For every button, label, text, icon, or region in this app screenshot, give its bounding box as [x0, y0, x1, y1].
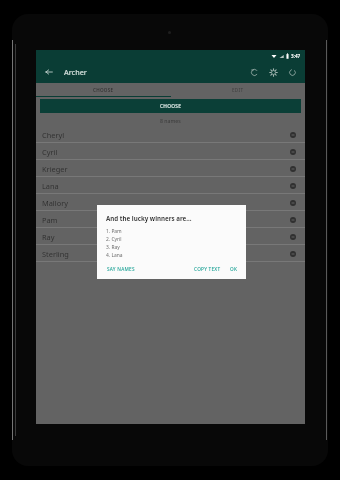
button[interactable]: Sterling — [36, 245, 305, 262]
staticText: 2. Cyril — [106, 236, 122, 243]
staticText: CHOOSE — [160, 103, 182, 110]
button[interactable]: Pam — [36, 211, 305, 228]
button[interactable]: Remove Sterling — [287, 248, 299, 260]
staticText: Mallory — [42, 198, 68, 208]
staticText: 8 names — [160, 117, 181, 124]
staticText: 1. Pam — [106, 228, 122, 235]
staticText: CHOOSE — [93, 87, 114, 93]
button[interactable]: Remove Mallory — [287, 197, 299, 209]
button[interactable]: Cyril — [36, 143, 305, 160]
button[interactable]: Krieger — [36, 160, 305, 177]
button[interactable]: OK — [229, 265, 239, 273]
staticText: Cheryl — [42, 130, 65, 140]
staticText: 3:47 — [291, 53, 301, 59]
button[interactable]: Settings — [266, 65, 280, 79]
button[interactable]: SAY NAMES — [106, 265, 136, 273]
staticText: Krieger — [42, 164, 68, 174]
staticText: Lana — [42, 181, 59, 191]
button[interactable]: CHOOSE — [36, 83, 170, 97]
button[interactable]: Remove Krieger — [287, 163, 299, 175]
button[interactable]: Lana — [36, 177, 305, 194]
staticText: 4. Lana — [106, 252, 123, 259]
button[interactable]: Remove Cheryl — [287, 129, 299, 141]
button[interactable]: Undo — [247, 65, 261, 79]
staticText: Archer — [64, 67, 87, 77]
staticText: Pam — [42, 215, 58, 225]
button[interactable]: Remove Ray — [287, 231, 299, 243]
button[interactable]: Remove Pam — [287, 214, 299, 226]
button[interactable]: Ray — [36, 228, 305, 245]
staticText: Sterling — [42, 249, 69, 259]
staticText: EDIT — [232, 87, 244, 93]
staticText: And the lucky winners are… — [106, 214, 192, 222]
button[interactable]: Back — [42, 65, 56, 79]
button[interactable]: Refresh — [285, 65, 299, 79]
staticText: OK — [230, 266, 238, 272]
staticText: SAY NAMES — [107, 266, 135, 272]
button[interactable]: Mallory — [36, 194, 305, 211]
button[interactable]: CHOOSE — [40, 99, 301, 113]
button[interactable]: Remove Lana — [287, 180, 299, 192]
button[interactable]: COPY TEXT — [193, 265, 222, 273]
staticText: Ray — [42, 232, 55, 242]
staticText: COPY TEXT — [194, 266, 221, 272]
staticText: Cyril — [42, 147, 58, 157]
button[interactable]: Cheryl — [36, 126, 305, 143]
button[interactable]: Remove Cyril — [287, 146, 299, 158]
staticText: 3. Ray — [106, 244, 120, 251]
